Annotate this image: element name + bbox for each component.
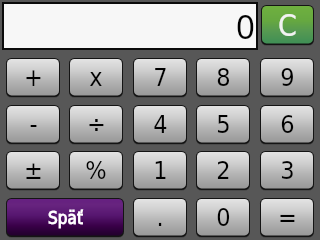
staticText: 1: [153, 156, 168, 185]
staticText: ÷: [87, 110, 106, 139]
staticText: 9: [280, 63, 295, 92]
staticText: C: [278, 8, 297, 43]
button[interactable]: =: [260, 198, 314, 237]
staticText: x: [89, 63, 103, 92]
staticText: 0: [216, 203, 231, 232]
staticText: 0: [236, 4, 255, 48]
button[interactable]: ±: [6, 151, 60, 190]
button[interactable]: 6: [260, 105, 314, 144]
staticText: -: [29, 110, 38, 139]
button[interactable]: 5: [196, 105, 250, 144]
button[interactable]: -: [6, 105, 60, 144]
button[interactable]: 1: [133, 151, 187, 190]
staticText: 2: [216, 156, 231, 185]
button[interactable]: %: [69, 151, 123, 190]
button[interactable]: Späť: [6, 198, 124, 237]
button[interactable]: 9: [260, 58, 314, 97]
staticText: 6: [280, 110, 295, 139]
button[interactable]: 8: [196, 58, 250, 97]
staticText: 8: [216, 63, 231, 92]
button[interactable]: C: [261, 5, 314, 45]
staticText: Späť: [48, 208, 83, 228]
staticText: %: [85, 156, 107, 185]
button[interactable]: x: [69, 58, 123, 97]
staticText: ±: [24, 156, 43, 185]
staticText: .: [156, 203, 164, 232]
button[interactable]: +: [6, 58, 60, 97]
staticText: 5: [216, 110, 231, 139]
button[interactable]: 3: [260, 151, 314, 190]
button[interactable]: 0: [196, 198, 250, 237]
button[interactable]: 4: [133, 105, 187, 144]
staticText: 7: [153, 63, 168, 92]
button[interactable]: ÷: [69, 105, 123, 144]
button[interactable]: 7: [133, 58, 187, 97]
staticText: +: [24, 63, 43, 92]
staticText: =: [278, 203, 297, 232]
staticText: 4: [153, 110, 168, 139]
button[interactable]: .: [133, 198, 187, 237]
staticText: 3: [280, 156, 295, 185]
button[interactable]: 2: [196, 151, 250, 190]
